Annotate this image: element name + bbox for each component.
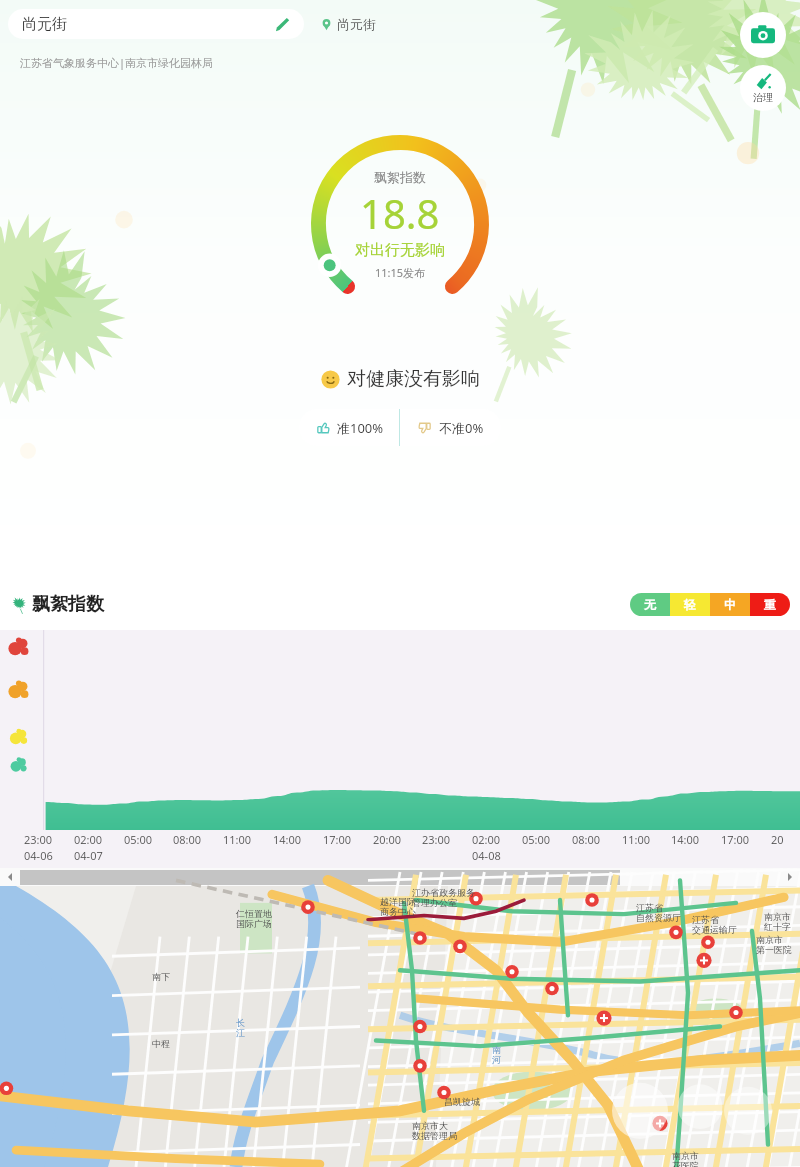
staticText: 08:00 xyxy=(173,832,202,847)
staticText: 中 xyxy=(724,597,736,612)
staticText: 05:00 xyxy=(522,832,551,847)
staticText: 17:00 xyxy=(721,832,750,847)
button[interactable]: 尚元街 xyxy=(318,14,378,34)
staticText: 17:00 xyxy=(323,832,352,847)
staticText: 轻 xyxy=(684,597,696,612)
staticText: 南 河 xyxy=(492,1044,501,1066)
staticText: 11:00 xyxy=(622,832,651,847)
staticText: 02:00 xyxy=(74,832,103,847)
staticText: 11:15发布 xyxy=(375,265,426,280)
staticText: 中程 xyxy=(152,1038,170,1049)
staticText: 尚元街 xyxy=(337,16,376,32)
staticText: 南京市 第一医院 xyxy=(756,934,792,956)
staticText: 23:00 xyxy=(24,832,53,847)
staticText: 南下 xyxy=(152,971,170,982)
staticText: 南京市 红十字 xyxy=(764,911,791,933)
staticText: 南京市大 数据管理局 xyxy=(412,1120,457,1142)
button[interactable]: Scroll left xyxy=(0,868,20,886)
button[interactable]: Camera xyxy=(740,12,786,58)
button[interactable]: 尚元街 xyxy=(8,9,304,39)
staticText: 飘絮指数 xyxy=(32,593,104,616)
staticText: 江办省政务服务 管理办公室 xyxy=(412,887,475,909)
button[interactable]: Scroll right xyxy=(780,868,800,886)
staticText: 08:00 xyxy=(572,832,601,847)
staticText: 仁恒置地 国际广场 xyxy=(236,908,272,930)
staticText: 南京市 花医院 xyxy=(672,1150,699,1167)
button[interactable]: 不准0% xyxy=(400,409,501,446)
button[interactable]: Map xyxy=(0,886,800,1167)
staticText: 长 江 xyxy=(236,1017,245,1039)
staticText: 18.8 xyxy=(360,186,440,240)
staticText: 治理 xyxy=(753,91,773,104)
staticText: 05:00 xyxy=(124,832,153,847)
staticText: 14:00 xyxy=(273,832,302,847)
staticText: 对出行无影响 xyxy=(355,241,445,260)
button[interactable]: 准100% xyxy=(299,409,399,446)
staticText: 江苏省 交通运输厅 xyxy=(692,914,737,936)
staticText: 重 xyxy=(764,597,776,612)
button[interactable]: 无 xyxy=(630,593,790,616)
staticText: 江苏省 自然资源厅 xyxy=(636,902,681,924)
staticText: 对健康没有影响 xyxy=(347,367,480,391)
button[interactable]: 治理 xyxy=(740,65,786,111)
staticText: 04-06 xyxy=(24,848,53,863)
staticText: 尚元街 xyxy=(22,15,67,34)
button[interactable]: Timeline scrollbar xyxy=(20,870,620,885)
staticText: 23:00 xyxy=(422,832,451,847)
staticText: 飘絮指数 xyxy=(374,169,426,185)
staticText: 20:00 xyxy=(373,832,402,847)
staticText: 11:00 xyxy=(223,832,252,847)
staticText: 04-08 xyxy=(472,848,501,863)
staticText: 昌凯旋城 xyxy=(444,1096,480,1107)
staticText: 江苏省气象服务中心|南京市绿化园林局 xyxy=(20,55,214,70)
staticText: 越洋国际 商务中心 xyxy=(380,896,416,918)
staticText: 不准0% xyxy=(439,419,484,437)
staticText: 04-07 xyxy=(74,848,103,863)
staticText: 14:00 xyxy=(671,832,700,847)
staticText: 准100% xyxy=(337,419,384,437)
staticText: 20 xyxy=(771,832,784,847)
staticText: 02:00 xyxy=(472,832,501,847)
staticText: 无 xyxy=(644,597,656,612)
